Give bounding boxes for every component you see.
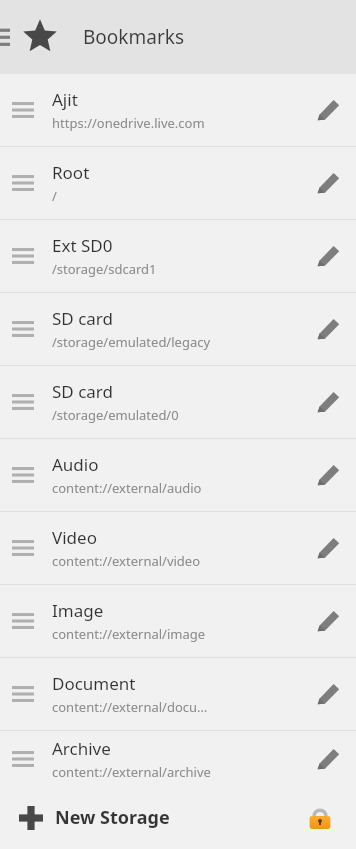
button[interactable]: Reorder: [0, 658, 356, 731]
button[interactable]: Reorder: [0, 74, 356, 147]
staticText: content://external/archive: [52, 763, 211, 781]
button[interactable]: Edit: [300, 301, 356, 357]
other: Reorder: [12, 100, 34, 120]
staticText: Audio: [52, 453, 99, 476]
staticText: /storage/emulated/legacy: [52, 333, 211, 351]
staticText: New Storage: [55, 805, 170, 830]
button[interactable]: Reorder: [0, 512, 356, 585]
staticText: content://external/image: [52, 625, 206, 643]
other: Reorder: [12, 465, 34, 485]
staticText: /: [52, 187, 57, 205]
other: Menu: [0, 26, 10, 48]
button[interactable]: Lock: [292, 790, 348, 846]
staticText: Archive: [52, 737, 111, 760]
button[interactable]: Reorder: [0, 147, 356, 220]
other: Reorder: [12, 611, 34, 631]
staticText: Document: [52, 672, 136, 695]
button[interactable]: Reorder: [0, 439, 356, 512]
button[interactable]: Reorder: [0, 731, 356, 786]
other: Reorder: [12, 684, 34, 704]
button[interactable]: Reorder: [0, 293, 356, 366]
button[interactable]: Edit: [300, 374, 356, 430]
button[interactable]: Edit: [300, 82, 356, 138]
staticText: SD card: [52, 380, 113, 403]
staticText: Video: [52, 526, 97, 549]
other: Bookmarks: [22, 19, 58, 55]
staticText: content://external/audio: [52, 479, 202, 497]
button[interactable]: New Storage: [0, 786, 292, 849]
button[interactable]: Edit: [300, 520, 356, 576]
button[interactable]: Reorder: [0, 585, 356, 658]
button[interactable]: Edit: [300, 731, 356, 786]
staticText: Bookmarks: [83, 24, 185, 50]
staticText: /storage/sdcard1: [52, 260, 157, 278]
other: Reorder: [12, 246, 34, 266]
staticText: content://external/video: [52, 552, 201, 570]
staticText: /storage/emulated/0: [52, 406, 179, 424]
button[interactable]: Reorder: [0, 220, 356, 293]
button[interactable]: Edit: [300, 447, 356, 503]
other: Reorder: [12, 392, 34, 412]
button[interactable]: Reorder: [0, 366, 356, 439]
other: Reorder: [12, 749, 34, 769]
staticText: Ajit: [52, 88, 78, 111]
staticText: SD card: [52, 307, 113, 330]
other: Reorder: [12, 538, 34, 558]
staticText: content://external/docu…: [52, 698, 208, 716]
staticText: Root: [52, 161, 90, 184]
button[interactable]: Edit: [300, 155, 356, 211]
button[interactable]: Edit: [300, 228, 356, 284]
other: Reorder: [12, 319, 34, 339]
staticText: https://onedrive.live.com: [52, 114, 205, 132]
staticText: Ext SD0: [52, 234, 113, 257]
button[interactable]: Edit: [300, 666, 356, 722]
staticText: Image: [52, 599, 104, 622]
button[interactable]: Edit: [300, 593, 356, 649]
other: Reorder: [12, 173, 34, 193]
